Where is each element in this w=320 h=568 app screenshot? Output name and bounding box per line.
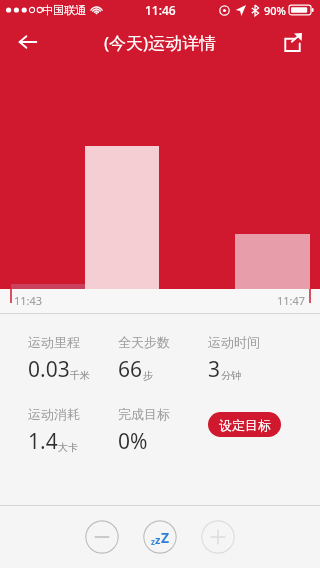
- staticText: 11:47: [277, 293, 306, 308]
- staticText: (今天)运动详情: [104, 31, 217, 54]
- staticText: 千米: [70, 369, 90, 382]
- staticText: 完成目标: [118, 406, 170, 422]
- button[interactable]: Back: [6, 20, 50, 64]
- staticText: 运动里程: [28, 334, 80, 350]
- staticText: z: [155, 532, 161, 547]
- staticText: 11:43: [14, 293, 43, 308]
- staticText: 运动消耗: [28, 406, 80, 422]
- button[interactable]: Increase: [201, 520, 235, 554]
- staticText: Z: [161, 528, 170, 547]
- staticText: 1.4: [28, 427, 58, 456]
- staticText: 运动时间: [208, 334, 260, 350]
- staticText: 全天步数: [118, 334, 170, 350]
- staticText: 0.03: [28, 355, 70, 384]
- button[interactable]: 设定目标: [208, 412, 281, 437]
- staticText: 66: [118, 355, 143, 384]
- staticText: 步: [143, 369, 153, 382]
- staticText: 90%: [264, 3, 286, 18]
- button[interactable]: Decrease: [85, 520, 119, 554]
- button[interactable]: Share: [270, 20, 314, 64]
- staticText: 分钟: [221, 369, 241, 382]
- staticText: 0%: [118, 427, 148, 456]
- staticText: 11:46: [145, 2, 176, 18]
- staticText: 大卡: [58, 441, 78, 454]
- button[interactable]: Sleep: [143, 520, 177, 554]
- staticText: 中国联通: [42, 3, 86, 17]
- staticText: 设定目标: [219, 417, 271, 433]
- staticText: 3: [208, 355, 221, 384]
- staticText: z: [151, 536, 155, 547]
